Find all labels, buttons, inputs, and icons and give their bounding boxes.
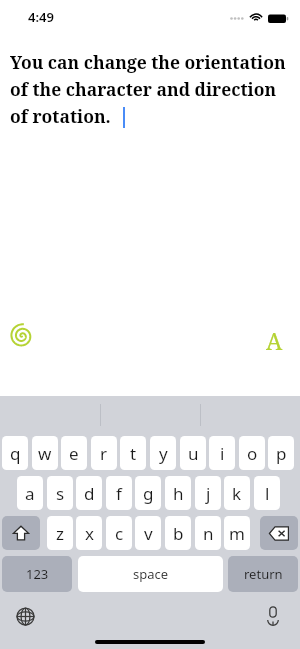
button[interactable]: s <box>47 476 73 510</box>
button[interactable]: z <box>47 516 73 550</box>
staticText: b <box>173 522 184 545</box>
button[interactable]: x <box>76 516 102 550</box>
staticText: h <box>173 482 184 505</box>
staticText: q <box>10 442 21 465</box>
button[interactable]: y <box>150 436 176 470</box>
button[interactable]: c <box>106 516 132 550</box>
button[interactable]: l <box>254 476 280 510</box>
staticText: m <box>229 522 245 545</box>
staticText: r <box>100 442 108 465</box>
button[interactable]: f <box>106 476 132 510</box>
button[interactable]: b <box>165 516 191 550</box>
staticText: i <box>220 442 225 465</box>
staticText: p <box>276 442 287 465</box>
button[interactable]: w <box>32 436 58 470</box>
staticText: o <box>247 442 258 465</box>
button[interactable]: n <box>195 516 221 550</box>
other: Letter A character <box>262 325 286 355</box>
staticText: space <box>133 565 169 583</box>
button[interactable]: m <box>224 516 250 550</box>
staticText: 4:49 <box>28 8 54 26</box>
staticText: g <box>143 482 154 505</box>
button[interactable]: space <box>78 556 223 592</box>
staticText: 123 <box>26 565 49 583</box>
button[interactable]: Backspace <box>260 516 298 550</box>
other: Spiral character <box>9 323 35 349</box>
staticText: v <box>144 522 153 545</box>
staticText: z <box>56 522 64 545</box>
staticText: return <box>244 565 283 583</box>
staticText: f <box>116 482 122 505</box>
staticText: d <box>84 482 95 505</box>
staticText: n <box>203 522 214 545</box>
staticText: y <box>159 442 168 465</box>
staticText: l <box>265 482 270 505</box>
staticText: a <box>25 482 35 505</box>
staticText: You can change the orientation of the ch… <box>10 50 292 128</box>
button[interactable]: q <box>2 436 28 470</box>
button[interactable]: j <box>195 476 221 510</box>
button[interactable]: k <box>224 476 250 510</box>
button[interactable]: v <box>135 516 161 550</box>
staticText: e <box>69 442 79 465</box>
staticText: w <box>38 442 52 465</box>
button[interactable]: 123 <box>2 556 72 592</box>
button[interactable]: t <box>120 436 146 470</box>
button[interactable]: a <box>17 476 43 510</box>
button[interactable]: g <box>135 476 161 510</box>
staticText: A <box>266 325 283 355</box>
staticText: c <box>115 522 124 545</box>
staticText: u <box>188 442 199 465</box>
staticText: j <box>206 482 211 505</box>
staticText: s <box>56 482 65 505</box>
button[interactable]: Dictation <box>258 601 288 631</box>
button[interactable]: i <box>209 436 235 470</box>
button[interactable]: o <box>239 436 265 470</box>
button[interactable]: Shift <box>2 516 40 550</box>
button[interactable]: r <box>91 436 117 470</box>
button[interactable]: d <box>76 476 102 510</box>
button[interactable]: Switch keyboard language <box>10 601 40 631</box>
staticText: x <box>85 522 94 545</box>
staticText: k <box>232 482 242 505</box>
button[interactable]: return <box>228 556 298 592</box>
staticText: t <box>130 442 137 465</box>
button[interactable]: h <box>165 476 191 510</box>
button[interactable]: u <box>180 436 206 470</box>
button[interactable]: p <box>268 436 294 470</box>
button[interactable]: e <box>61 436 87 470</box>
